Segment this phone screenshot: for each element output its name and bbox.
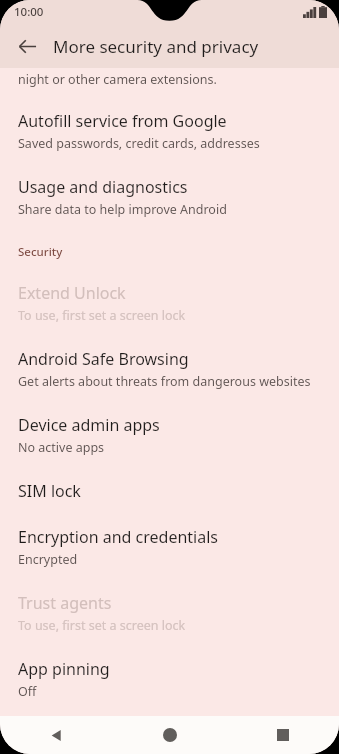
button[interactable]: Encryption and credentials (0, 526, 339, 568)
staticText: Get alerts about threats from dangerous … (18, 373, 311, 390)
staticText: Extend Unlock (18, 282, 126, 304)
staticText: Device admin apps (18, 414, 160, 436)
staticText: Trust agents (18, 592, 112, 614)
staticText: Saved passwords, credit cards, addresses (18, 135, 260, 152)
button[interactable]: App pinning (0, 658, 339, 700)
staticText: Usage and diagnostics (18, 176, 188, 198)
staticText: App pinning (18, 658, 110, 680)
staticText: Security (18, 244, 63, 260)
button[interactable]: Usage and diagnostics (0, 176, 339, 218)
staticText: Encrypted (18, 551, 78, 568)
staticText: SIM lock (18, 480, 81, 502)
staticText: Share data to help improve Android (18, 201, 227, 218)
button[interactable]: Back (0, 716, 113, 754)
button[interactable]: Extend Unlock (0, 282, 339, 324)
staticText: Encryption and credentials (18, 526, 218, 548)
button[interactable]: Device admin apps (0, 414, 339, 456)
staticText: 10:00 (14, 4, 44, 20)
button[interactable]: Android Safe Browsing (0, 348, 339, 390)
staticText: Android Safe Browsing (18, 348, 189, 370)
button[interactable]: night or other camera extensions. (0, 68, 339, 90)
staticText: To use, first set a screen lock (18, 617, 186, 634)
button[interactable]: Autofill service from Google (0, 110, 339, 152)
staticText: Off (18, 683, 37, 700)
button[interactable]: Trust agents (0, 592, 339, 634)
button[interactable]: Home (113, 716, 226, 754)
button[interactable]: Back (9, 28, 45, 64)
staticText: To use, first set a screen lock (18, 307, 186, 324)
staticText: night or other camera extensions. (18, 71, 217, 88)
button[interactable]: Recent apps (226, 716, 339, 754)
staticText: No active apps (18, 439, 105, 456)
button[interactable]: SIM lock (0, 480, 339, 502)
staticText: More security and privacy (53, 35, 259, 58)
staticText: Autofill service from Google (18, 110, 227, 132)
